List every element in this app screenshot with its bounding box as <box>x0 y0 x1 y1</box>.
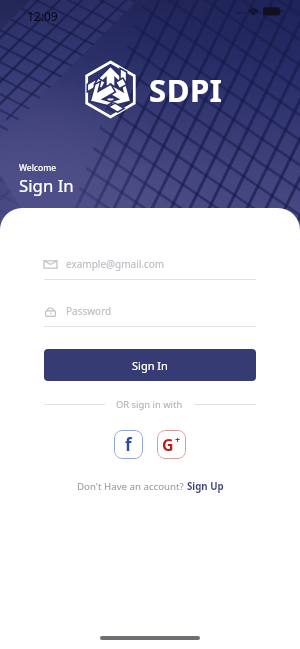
staticText: 12:09 <box>27 8 58 24</box>
button[interactable]: Sign In <box>44 349 256 381</box>
staticText: SDPI <box>149 69 223 111</box>
staticText: Don't Have an account? <box>77 480 187 493</box>
staticText: Sign In <box>19 174 74 197</box>
button[interactable]: Sign Up <box>187 480 224 493</box>
staticText: Sign Up <box>187 480 224 493</box>
staticText: Sign In <box>132 358 168 373</box>
staticText: f <box>125 433 132 456</box>
button[interactable]: Sign in with Facebook <box>114 430 143 459</box>
staticText: example@gmail.com <box>66 257 165 271</box>
button[interactable]: Sign in with Google <box>157 430 186 459</box>
staticText: OR sign in with <box>116 398 183 411</box>
staticText: G <box>162 434 174 456</box>
staticText: Welcome <box>19 162 57 174</box>
staticText: + <box>175 433 181 445</box>
staticText: Password <box>66 304 112 318</box>
